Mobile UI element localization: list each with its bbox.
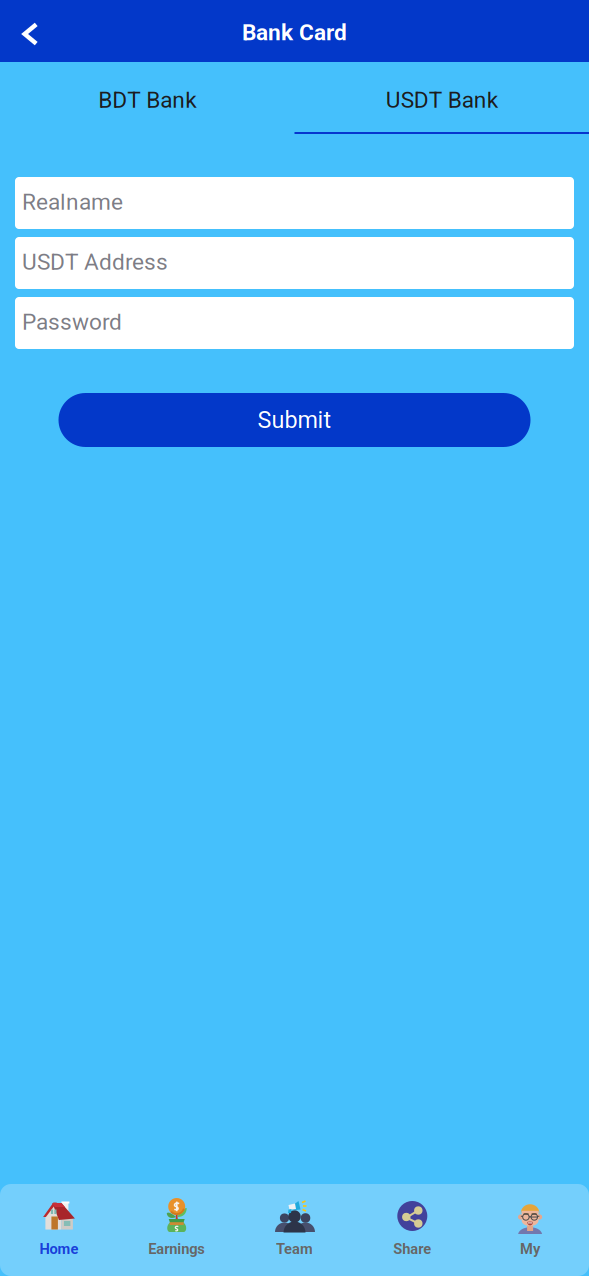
staticText: Password xyxy=(22,309,122,335)
button[interactable]: Share xyxy=(353,1188,471,1272)
staticText: Home xyxy=(39,1240,78,1258)
button[interactable]: Earnings xyxy=(118,1188,236,1272)
button[interactable]: USDT Bank xyxy=(294,62,589,134)
staticText: Team xyxy=(276,1240,313,1258)
button[interactable]: Home xyxy=(0,1188,118,1272)
staticText: Bank Card xyxy=(242,19,347,46)
staticText: USDT Address xyxy=(22,249,168,275)
staticText: Share xyxy=(393,1240,431,1258)
staticText: Earnings xyxy=(148,1240,205,1258)
staticText: BDT Bank xyxy=(98,87,196,113)
staticText: Realname xyxy=(22,189,123,215)
staticText: My xyxy=(520,1240,540,1258)
button[interactable]: Submit xyxy=(58,393,530,447)
staticText: USDT Bank xyxy=(386,87,498,113)
button[interactable]: My xyxy=(471,1188,589,1272)
button[interactable]: Back xyxy=(0,0,64,62)
staticText: Submit xyxy=(257,406,331,434)
button[interactable]: BDT Bank xyxy=(0,62,294,134)
button[interactable]: Team xyxy=(236,1188,353,1272)
